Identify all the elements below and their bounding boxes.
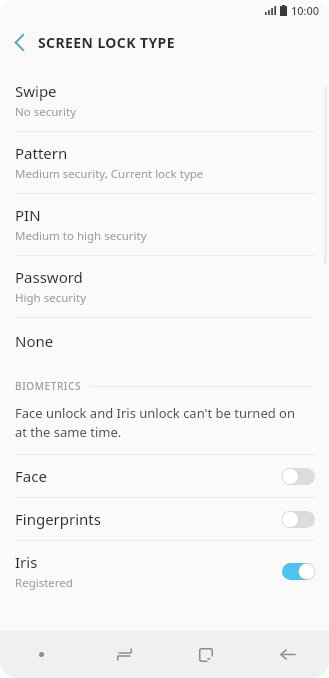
- button[interactable]: Face: [0, 455, 329, 497]
- button[interactable]: Password: [0, 256, 329, 317]
- staticText: PIN: [15, 205, 41, 225]
- staticText: No security: [15, 104, 77, 120]
- staticText: 10:00: [291, 3, 320, 18]
- button[interactable]: Back: [247, 631, 329, 678]
- staticText: Medium security, Current lock type: [15, 166, 204, 182]
- staticText: Fingerprints: [15, 509, 101, 529]
- button[interactable]: On switch for Iris: [282, 563, 315, 580]
- button[interactable]: Off switch for Fingerprints: [282, 511, 315, 528]
- staticText: Iris: [15, 552, 38, 572]
- staticText: SCREEN LOCK TYPE: [38, 33, 175, 52]
- button[interactable]: Fingerprints: [0, 498, 329, 540]
- staticText: Password: [15, 267, 83, 287]
- button[interactable]: Off switch for Face: [282, 468, 315, 485]
- button[interactable]: Recents: [83, 631, 165, 678]
- button[interactable]: Back: [0, 20, 38, 64]
- staticText: Face: [15, 466, 47, 486]
- staticText: Pattern: [15, 143, 68, 163]
- button[interactable]: Iris: [0, 541, 329, 602]
- staticText: High security: [15, 290, 87, 306]
- staticText: None: [15, 331, 54, 351]
- staticText: Face unlock and Iris unlock can't be tur…: [15, 404, 305, 441]
- staticText: Medium to high security: [15, 228, 147, 244]
- button[interactable]: Home: [165, 631, 247, 678]
- button[interactable]: PIN: [0, 194, 329, 255]
- button[interactable]: None: [0, 318, 329, 364]
- button[interactable]: Assistant: [0, 631, 83, 678]
- button[interactable]: Pattern: [0, 132, 329, 193]
- staticText: Registered: [15, 575, 73, 591]
- staticText: BIOMETRICS: [15, 379, 81, 393]
- button[interactable]: Swipe: [0, 70, 329, 131]
- staticText: Swipe: [15, 81, 57, 101]
